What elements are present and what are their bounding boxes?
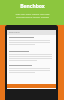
staticText: Benchbox <box>20 3 45 10</box>
staticText: Benchbox <box>9 31 20 34</box>
staticText: THE APP THAT HELPS YOU GET THINGS DONE M… <box>15 12 50 18</box>
button[interactable]: Benchbox <box>7 30 56 35</box>
